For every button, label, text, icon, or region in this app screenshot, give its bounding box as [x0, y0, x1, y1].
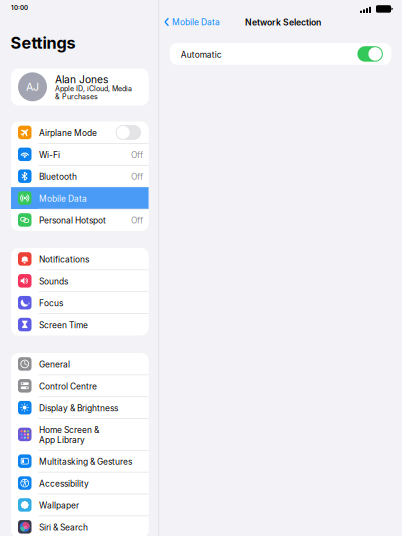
staticText: Network Selection — [245, 17, 321, 27]
button[interactable]: Wallpaper — [11, 494, 149, 516]
staticText: Siri & Search — [39, 522, 88, 532]
button[interactable]: Accessibility — [11, 472, 149, 494]
button[interactable]: Automatic — [170, 43, 391, 65]
staticText: Home Screen & — [39, 425, 99, 435]
button[interactable]: Siri & Search — [11, 516, 149, 536]
button[interactable]: Home Screen & — [11, 419, 149, 450]
button[interactable]: Screen Time — [11, 314, 149, 335]
button[interactable]: Bluetooth — [11, 165, 149, 187]
staticText: General — [39, 359, 70, 370]
button[interactable]: Focus — [11, 292, 149, 314]
staticText: Automatic — [181, 50, 222, 60]
button[interactable]: Personal Hotspot — [11, 209, 149, 231]
staticText: Airplane Mode — [39, 128, 97, 138]
button[interactable]: Control Centre — [11, 375, 149, 397]
button[interactable]: Airplane Mode — [11, 121, 149, 143]
button[interactable]: Display & Brightness — [11, 397, 149, 419]
button[interactable]: Wi-Fi — [11, 143, 149, 165]
staticText: Focus — [39, 298, 63, 308]
staticText: Control Centre — [39, 381, 97, 391]
staticText: AJ — [26, 80, 39, 93]
staticText: App Library — [39, 435, 85, 445]
staticText: Accessibility — [39, 479, 89, 489]
button[interactable]: General — [11, 353, 149, 375]
staticText: Notifications — [39, 254, 89, 265]
button[interactable]: Notifications — [11, 248, 149, 270]
staticText: Apple ID, iCloud, Media — [55, 84, 132, 93]
staticText: Sounds — [39, 276, 68, 286]
staticText: Screen Time — [39, 320, 88, 330]
button[interactable]: Mobile Data — [11, 187, 149, 209]
staticText: Alan Jones — [55, 73, 108, 86]
staticText: Mobile Data — [39, 194, 87, 204]
button[interactable]: AJ — [11, 68, 149, 105]
staticText: 10:00 — [11, 4, 28, 11]
button[interactable]: Multitasking & Gestures — [11, 450, 149, 472]
staticText: Multitasking & Gestures — [39, 457, 132, 467]
staticText: & Purchases — [55, 92, 98, 101]
staticText: Wi-Fi — [39, 150, 60, 160]
button[interactable]: Sounds — [11, 270, 149, 292]
staticText: Display & Brightness — [39, 403, 118, 413]
staticText: Bluetooth — [39, 172, 77, 182]
staticText: Personal Hotspot — [39, 215, 106, 226]
staticText: Off — [131, 215, 143, 226]
staticText: Off — [131, 150, 143, 160]
button[interactable]: Mobile Data — [164, 13, 224, 31]
staticText: Wallpaper — [39, 500, 79, 511]
staticText: Settings — [10, 33, 75, 53]
staticText: Mobile Data — [172, 17, 220, 27]
staticText: Off — [131, 172, 143, 182]
